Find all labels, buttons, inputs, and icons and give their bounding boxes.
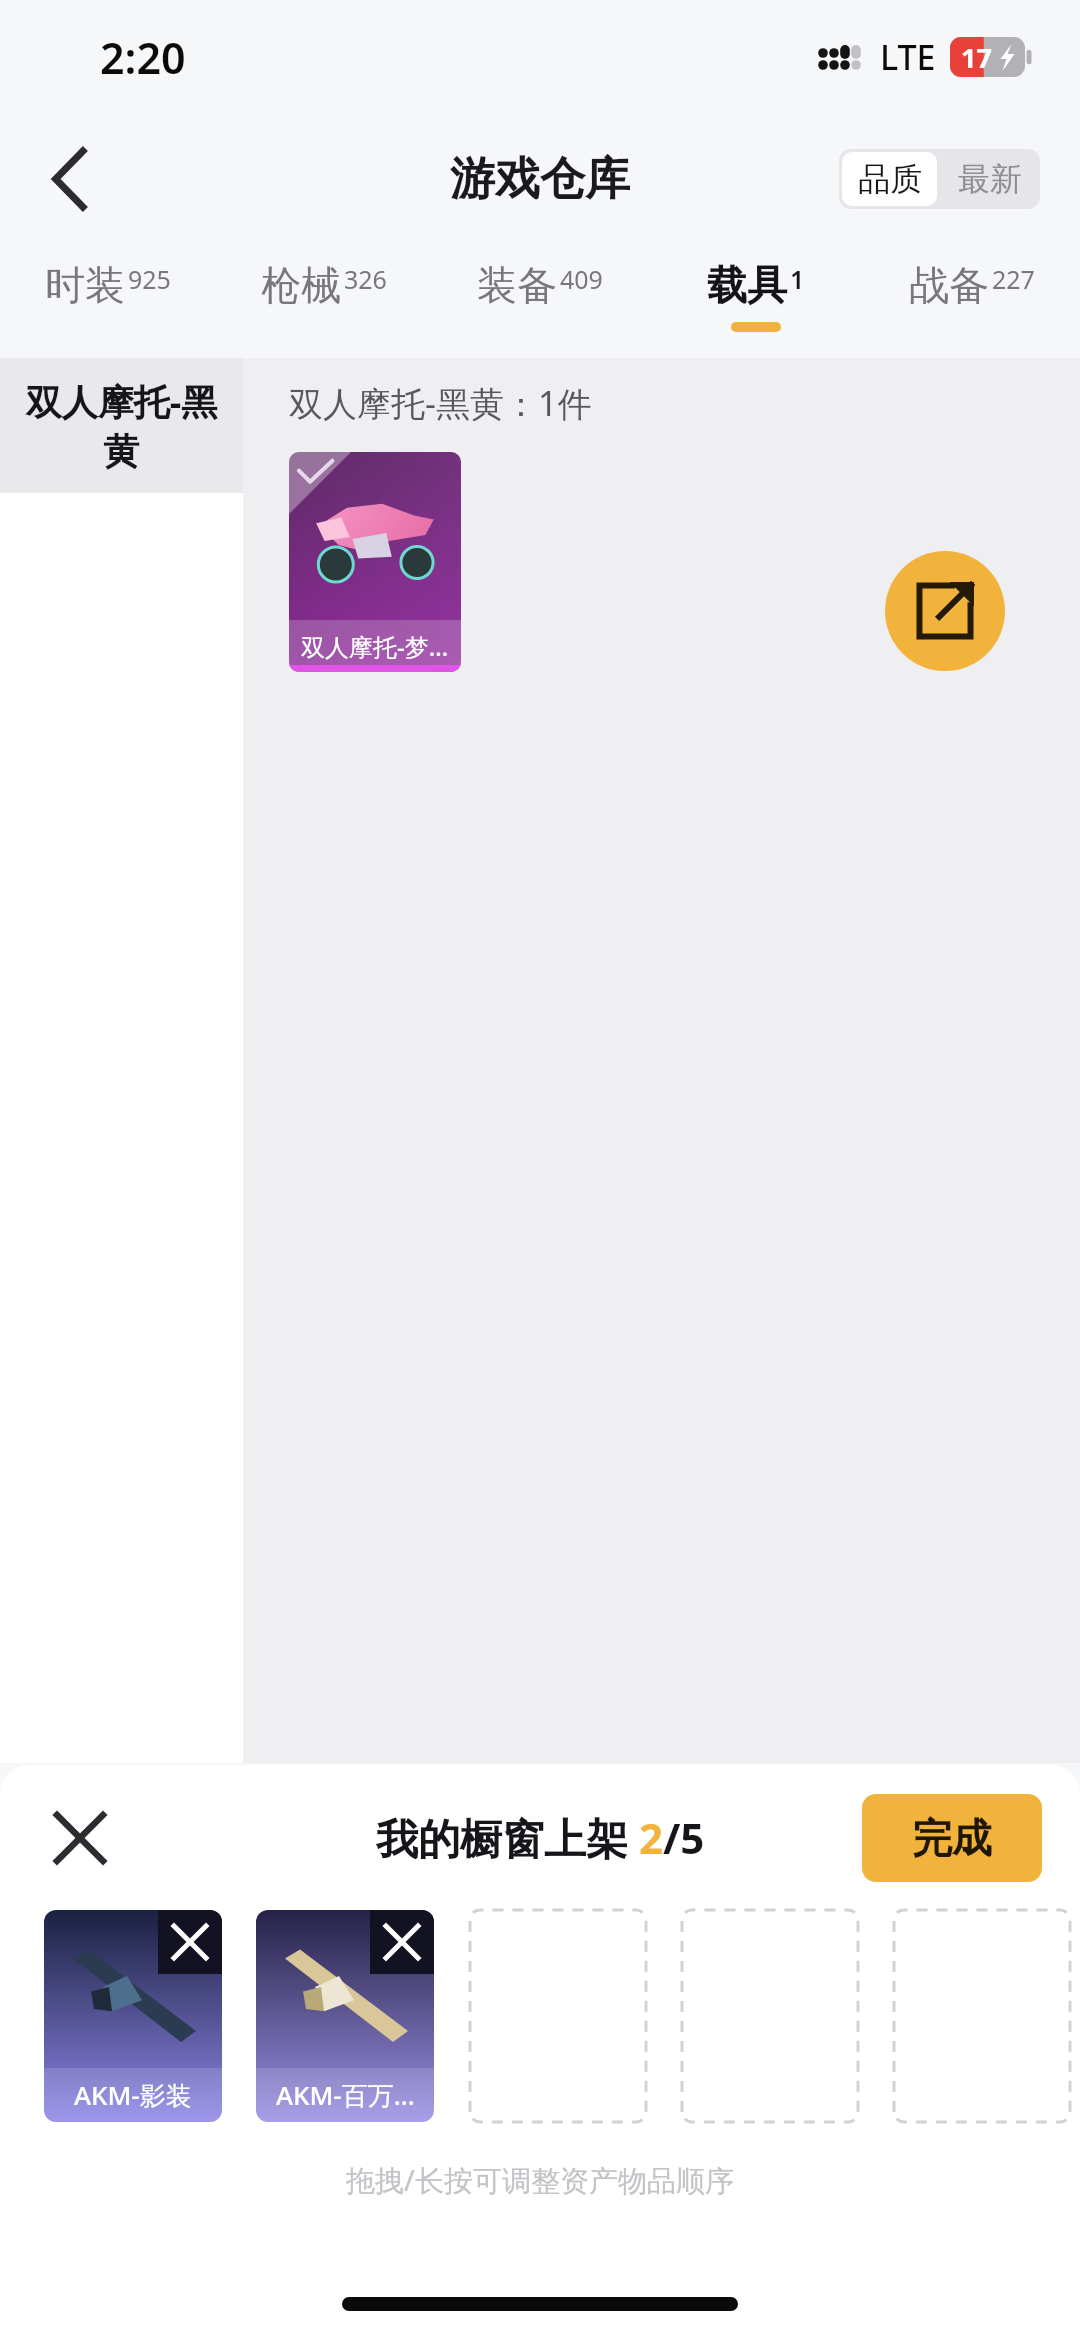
staticText: 双人摩托-黑黄 [18, 377, 225, 475]
staticText: 时装 [45, 260, 125, 310]
button[interactable]: 最新 [940, 149, 1040, 209]
button[interactable]: 载具 [648, 240, 864, 358]
staticText: AKM-影装 [74, 2077, 192, 2113]
staticText: 925 [128, 262, 171, 296]
button[interactable]: 品质 [842, 152, 937, 206]
button[interactable]: Remove [370, 1910, 434, 1974]
staticText: 1 [790, 262, 805, 296]
button[interactable]: 时装 [0, 240, 216, 358]
staticText: 战备 [909, 260, 989, 310]
button[interactable]: 完成 [862, 1794, 1042, 1882]
button[interactable]: AKM-百万… [256, 1910, 434, 2122]
staticText: 我的橱窗上架 2/5 [376, 1809, 705, 1866]
staticText: 227 [992, 262, 1035, 296]
button[interactable]: AKM-影装 [44, 1910, 222, 2122]
button[interactable]: 双人摩托-梦… [289, 452, 461, 672]
staticText: 17 [961, 39, 992, 76]
staticText: 双人摩托-黑黄：1件 [289, 380, 592, 426]
staticText: 载具 [707, 260, 787, 310]
button[interactable]: Remove [158, 1910, 222, 1974]
staticText: 拖拽/长按可调整资产物品顺序 [0, 2160, 1080, 2200]
staticText: 最新 [958, 159, 1022, 199]
button[interactable]: 双人摩托-黑黄 [0, 358, 243, 493]
button[interactable]: Back [26, 135, 114, 223]
staticText: 2:20 [100, 28, 186, 87]
button[interactable]: Close [38, 1796, 122, 1880]
button[interactable]: Share [885, 551, 1005, 671]
staticText: 完成 [912, 1813, 992, 1863]
staticText: 游戏仓库 [450, 151, 630, 208]
button[interactable]: 枪械 [216, 240, 432, 358]
button[interactable]: 装备 [432, 240, 648, 358]
staticText: 装备 [477, 260, 557, 310]
staticText: 品质 [858, 159, 922, 199]
staticText: 326 [344, 262, 387, 296]
button[interactable]: 战备 [864, 240, 1080, 358]
staticText: 409 [560, 262, 603, 296]
staticText: 枪械 [261, 260, 341, 310]
staticText: AKM-百万… [276, 2077, 415, 2113]
staticText: LTE [880, 34, 936, 80]
staticText: 双人摩托-梦… [301, 630, 449, 663]
